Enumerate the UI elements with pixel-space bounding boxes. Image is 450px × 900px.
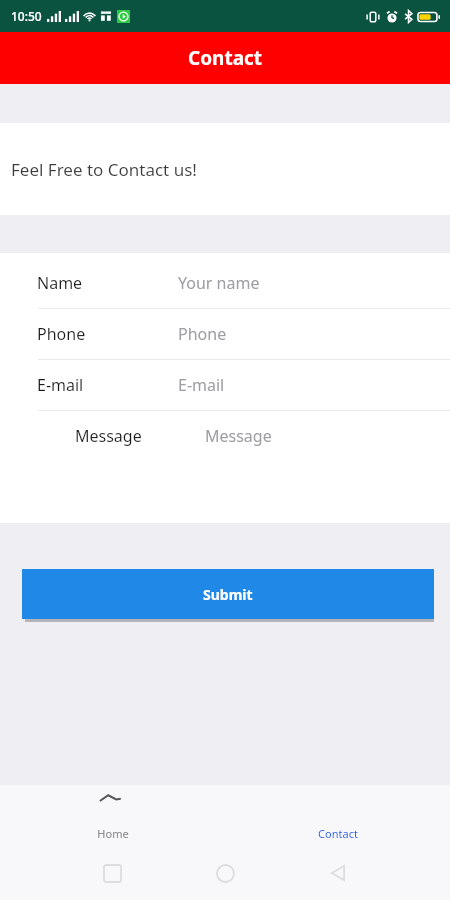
staticText: Contact — [318, 826, 358, 841]
staticText: Phone — [37, 323, 86, 345]
staticText: Message — [205, 425, 272, 447]
button[interactable]: Recent apps — [95, 856, 129, 890]
staticText: Contact — [188, 45, 263, 71]
staticText: Your name — [178, 272, 260, 294]
staticText: E-mail — [37, 374, 84, 396]
staticText: Phone — [178, 323, 227, 345]
other: Home indicator — [99, 794, 121, 802]
button[interactable]: Phone — [0, 309, 450, 360]
staticText: Feel Free to Contact us! — [11, 158, 197, 181]
button[interactable]: Home — [208, 856, 242, 890]
staticText: Name — [37, 272, 83, 294]
staticText: 10:50 — [11, 8, 42, 24]
button[interactable]: Back — [321, 856, 355, 890]
staticText: Message — [75, 425, 142, 447]
staticText: Submit — [203, 585, 253, 604]
button[interactable]: Home indicator — [0, 785, 225, 845]
staticText: E-mail — [178, 374, 225, 396]
button[interactable]: Contact — [0, 32, 450, 84]
button[interactable]: Message — [0, 411, 450, 461]
button[interactable]: E-mail — [0, 360, 450, 411]
staticText: Home — [97, 826, 129, 841]
button[interactable]: Submit — [22, 569, 434, 619]
button[interactable]: Contact — [225, 785, 450, 845]
button[interactable]: Name — [0, 258, 450, 309]
